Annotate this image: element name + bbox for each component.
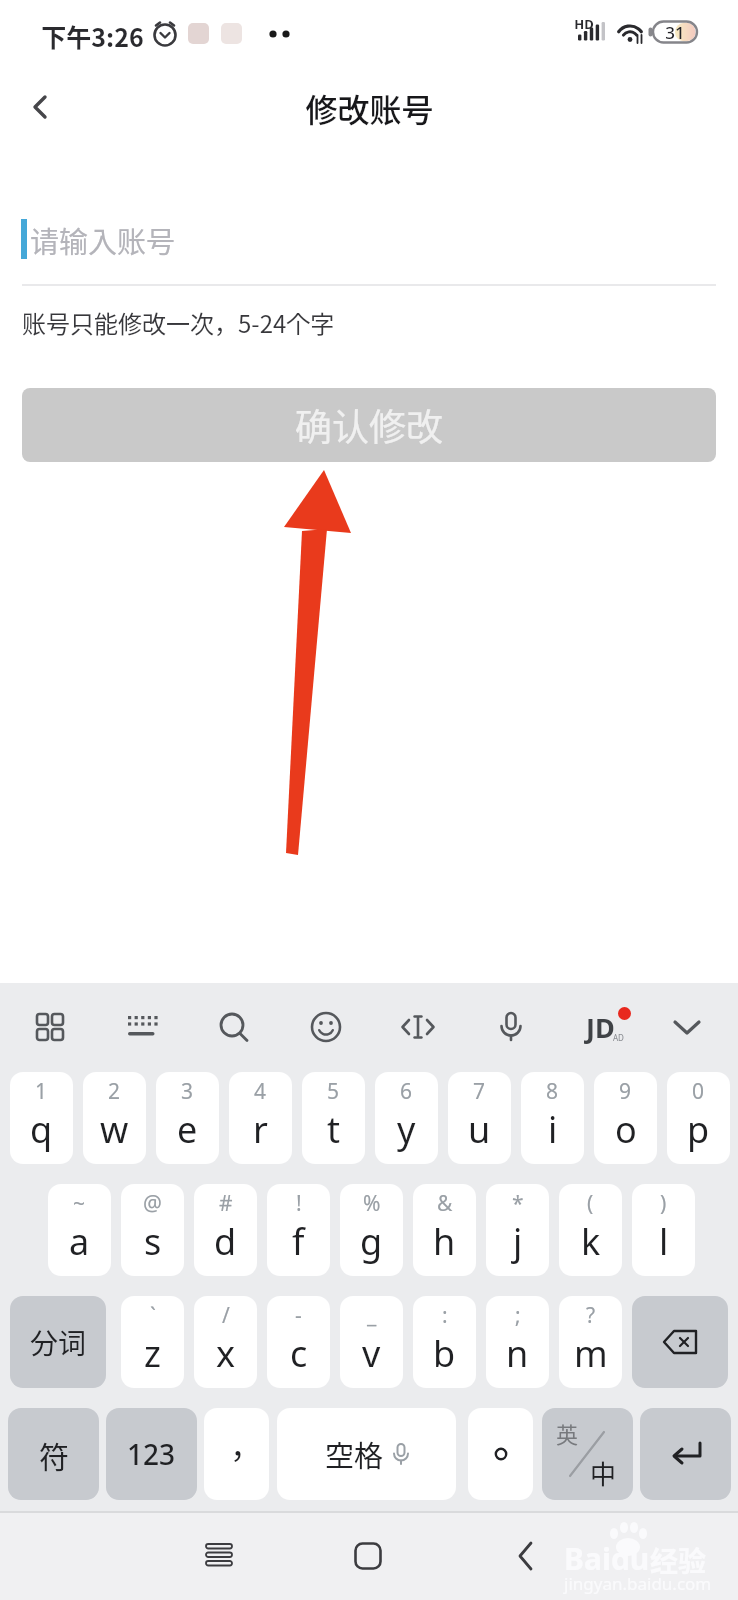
button[interactable]: ! <box>267 1184 330 1276</box>
staticText: ， <box>230 1421 263 1467</box>
button[interactable] <box>16 83 64 131</box>
button[interactable]: 8 <box>521 1072 584 1164</box>
staticText: @ <box>143 1189 162 1218</box>
staticText: t <box>327 1105 340 1154</box>
button[interactable]: ? <box>559 1296 622 1388</box>
button[interactable]: # <box>194 1184 257 1276</box>
button[interactable]: _ <box>340 1296 403 1388</box>
button[interactable]: @ <box>121 1184 184 1276</box>
staticText: 经验 <box>650 1540 707 1581</box>
staticText: 分词 <box>30 1322 87 1363</box>
staticText: a <box>69 1217 90 1266</box>
button[interactable] <box>197 1534 241 1578</box>
staticText: jingyan.baidu.com <box>564 1572 712 1595</box>
button[interactable]: 6 <box>375 1072 438 1164</box>
button[interactable]: JD <box>576 1005 632 1049</box>
button[interactable]: & <box>413 1184 476 1276</box>
button[interactable]: 5 <box>302 1072 365 1164</box>
staticText: j <box>513 1217 523 1266</box>
staticText: z <box>144 1329 161 1378</box>
staticText: 123 <box>127 1435 176 1473</box>
staticText: h <box>433 1217 456 1266</box>
staticText: r <box>253 1105 268 1154</box>
staticText: AD <box>613 1032 624 1043</box>
staticText: p <box>687 1105 710 1154</box>
staticText: k <box>581 1217 601 1266</box>
button[interactable]: 123 <box>106 1408 197 1500</box>
button[interactable]: 3 <box>156 1072 219 1164</box>
staticText: q <box>30 1105 53 1154</box>
staticText: 中 <box>590 1454 617 1492</box>
staticText: 9 <box>619 1077 632 1106</box>
button[interactable]: ~ <box>48 1184 111 1276</box>
staticText: 31 <box>665 21 685 44</box>
staticText: 8 <box>546 1077 559 1106</box>
staticText: w <box>100 1105 129 1154</box>
button[interactable]: 0 <box>667 1072 730 1164</box>
staticText: HD <box>574 15 594 31</box>
button[interactable]: - <box>267 1296 330 1388</box>
button[interactable]: % <box>340 1184 403 1276</box>
button[interactable]: 英 <box>542 1408 633 1500</box>
button[interactable] <box>306 1007 346 1047</box>
button[interactable]: ) <box>632 1184 695 1276</box>
button[interactable] <box>121 1007 161 1047</box>
staticText: 符 <box>39 1433 69 1476</box>
button[interactable]: * <box>486 1184 549 1276</box>
staticText: 空格 <box>325 1433 384 1475</box>
button[interactable]: 请输入账号 <box>0 200 738 286</box>
staticText: ; <box>515 1301 521 1330</box>
button[interactable] <box>640 1408 731 1500</box>
button[interactable]: ` <box>121 1296 184 1388</box>
button[interactable]: 分词 <box>10 1296 106 1388</box>
staticText: 确认修改 <box>295 398 443 452</box>
button[interactable] <box>632 1296 728 1388</box>
staticText: & <box>437 1189 453 1218</box>
button[interactable]: 1 <box>10 1072 73 1164</box>
button[interactable]: 符 <box>8 1408 99 1500</box>
button[interactable] <box>346 1534 390 1578</box>
button[interactable]: 确认修改 <box>22 388 716 462</box>
staticText: m <box>574 1329 608 1378</box>
staticText: 3 <box>181 1077 194 1106</box>
staticText: d <box>214 1217 237 1266</box>
staticText: 5 <box>327 1077 340 1106</box>
button[interactable]: ; <box>486 1296 549 1388</box>
button[interactable] <box>667 1007 707 1047</box>
button[interactable]: 空格 <box>277 1408 456 1500</box>
staticText: 7 <box>473 1077 486 1106</box>
staticText: ( <box>587 1189 594 1218</box>
staticText: / <box>222 1301 230 1330</box>
staticText: % <box>363 1189 381 1218</box>
staticText: - <box>295 1301 302 1330</box>
staticText: 下午3:26 <box>41 18 144 50</box>
button[interactable]: ( <box>559 1184 622 1276</box>
button[interactable] <box>398 1007 438 1047</box>
staticText: f <box>292 1217 305 1266</box>
button[interactable] <box>491 1007 531 1047</box>
staticText: ` <box>150 1301 156 1330</box>
button[interactable] <box>468 1408 533 1500</box>
staticText: y <box>397 1105 416 1154</box>
button[interactable] <box>30 1007 70 1047</box>
staticText: o <box>615 1105 637 1154</box>
staticText: i <box>548 1105 558 1154</box>
staticText: _ <box>367 1301 377 1330</box>
button[interactable]: 2 <box>83 1072 146 1164</box>
button[interactable]: 4 <box>229 1072 292 1164</box>
staticText: 2 <box>108 1077 121 1106</box>
button[interactable]: 9 <box>594 1072 657 1164</box>
staticText: x <box>216 1329 236 1378</box>
button[interactable]: / <box>194 1296 257 1388</box>
button[interactable]: ， <box>204 1408 269 1500</box>
button[interactable] <box>214 1008 254 1048</box>
button[interactable]: 7 <box>448 1072 511 1164</box>
button[interactable] <box>504 1534 548 1578</box>
staticText: e <box>177 1105 198 1154</box>
staticText: 请输入账号 <box>30 219 176 261</box>
staticText: JD <box>586 1009 615 1046</box>
staticText: s <box>144 1217 162 1266</box>
staticText: * <box>512 1189 524 1218</box>
staticText: 4 <box>254 1077 267 1106</box>
button[interactable]: : <box>413 1296 476 1388</box>
